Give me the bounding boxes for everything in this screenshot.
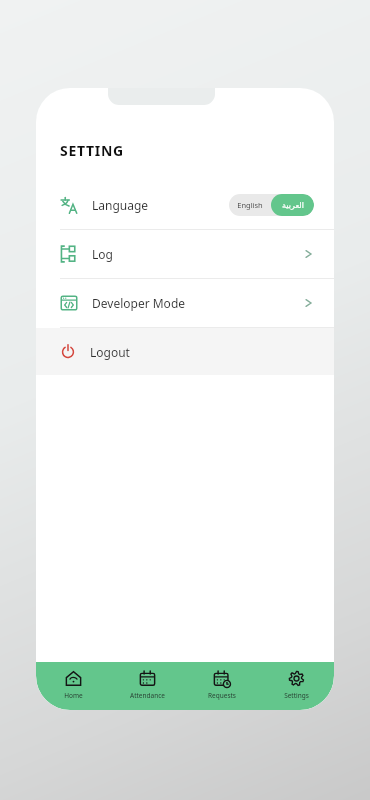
staticText: Requests [208, 691, 236, 700]
staticText: Log [92, 246, 113, 262]
staticText: Home [64, 691, 83, 700]
button[interactable]: Settings [259, 662, 334, 710]
staticText: SETTING [60, 141, 124, 160]
staticText: العربية [282, 201, 304, 210]
staticText: English [237, 200, 263, 210]
button[interactable]: Log [36, 230, 334, 278]
staticText: Settings [284, 691, 309, 700]
staticText: Logout [90, 344, 130, 360]
button[interactable]: Logout [36, 328, 334, 375]
button[interactable]: Attendance [110, 662, 184, 710]
button[interactable]: Home [36, 662, 110, 710]
button[interactable]: العربية [271, 194, 314, 216]
button[interactable]: Language [36, 181, 334, 229]
button[interactable]: Developer Mode [36, 279, 334, 327]
staticText: Language [92, 197, 149, 213]
staticText: Developer Mode [92, 295, 186, 311]
button[interactable]: Requests [184, 662, 259, 710]
button[interactable]: English [229, 194, 271, 216]
staticText: Attendance [130, 691, 165, 700]
